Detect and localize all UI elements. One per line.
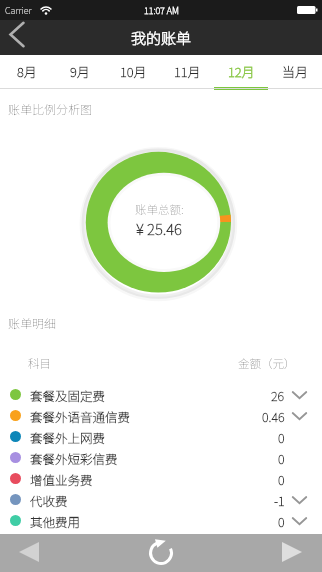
staticText: 9月 [70, 62, 90, 81]
button[interactable]: 套餐外短彩信费 [0, 447, 322, 468]
staticText: 11月 [174, 62, 201, 81]
staticText: 10月 [120, 62, 147, 81]
button[interactable] [0, 20, 40, 55]
staticText: 账单比例分析图 [8, 100, 93, 117]
staticText: 科目 [28, 355, 51, 371]
staticText: 26 [271, 386, 285, 404]
staticText: 0 [278, 428, 285, 446]
button[interactable]: 8月 [0, 55, 53, 88]
button[interactable]: 套餐外上网费 [0, 426, 322, 447]
staticText: 我的账单 [131, 27, 192, 49]
staticText: Carrier [5, 4, 32, 17]
staticText: 账单总额: [135, 201, 184, 218]
button[interactable]: 当月 [268, 55, 322, 88]
staticText: 套餐外语音通信费 [30, 407, 131, 425]
button[interactable]: 套餐外语音通信费 [0, 405, 322, 426]
button[interactable]: 代收费 [0, 489, 322, 510]
staticText: 金额（元） [238, 355, 296, 371]
staticText: 0 [278, 470, 285, 488]
button[interactable]: 10月 [106, 55, 160, 88]
staticText: ¥ 25.46 [136, 218, 182, 240]
button[interactable] [272, 534, 312, 572]
staticText: 增值业务费 [30, 470, 93, 488]
button[interactable]: 11月 [160, 55, 214, 88]
staticText: 套餐外上网费 [30, 428, 106, 446]
staticText: 代收费 [30, 491, 68, 509]
staticText: -1 [274, 491, 285, 509]
button[interactable] [9, 534, 49, 572]
staticText: 当月 [282, 62, 309, 81]
staticText: 0.46 [262, 407, 285, 425]
staticText: 0 [278, 449, 285, 467]
staticText: 11:07 AM [144, 4, 179, 17]
staticText: 套餐外短彩信费 [30, 449, 118, 467]
staticText: 0 [278, 512, 285, 530]
staticText: 套餐及固定费 [30, 386, 106, 404]
button[interactable]: 套餐及固定费 [0, 384, 322, 405]
staticText: 账单明细 [8, 314, 57, 331]
staticText: 8月 [17, 62, 37, 81]
button[interactable]: 12月 [214, 55, 268, 88]
button[interactable]: 9月 [53, 55, 106, 88]
staticText: 12月 [228, 62, 255, 81]
staticText: 其他费用 [30, 512, 81, 530]
button[interactable] [141, 534, 181, 572]
button[interactable]: 其他费用 [0, 510, 322, 531]
button[interactable]: 增值业务费 [0, 468, 322, 489]
